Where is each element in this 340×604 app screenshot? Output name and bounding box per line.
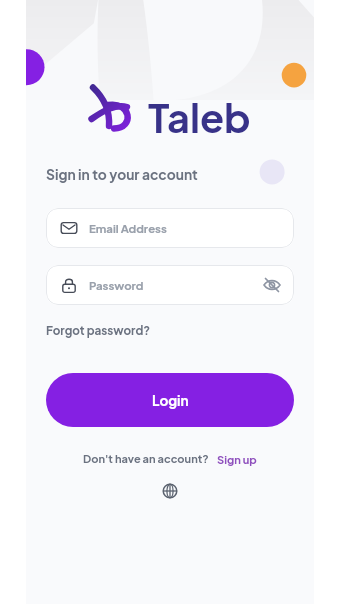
- button[interactable]: Login: [46, 373, 294, 427]
- button[interactable]: Password: [46, 265, 294, 305]
- button[interactable]: Show password: [262, 275, 282, 295]
- staticText: Sign up: [217, 452, 257, 466]
- staticText: Forgot password?: [46, 323, 151, 338]
- button[interactable]: Forgot password?: [46, 323, 151, 338]
- button[interactable]: Email Address: [46, 208, 294, 248]
- staticText: Login: [152, 392, 189, 409]
- staticText: Email Address: [89, 221, 167, 235]
- staticText: Don't have an account?: [83, 452, 209, 466]
- button[interactable]: Change language: [160, 481, 180, 501]
- staticText: Taleb: [148, 92, 251, 142]
- staticText: Password: [89, 278, 144, 292]
- button[interactable]: Sign up: [217, 452, 257, 466]
- staticText: Sign in to your account: [46, 166, 198, 183]
